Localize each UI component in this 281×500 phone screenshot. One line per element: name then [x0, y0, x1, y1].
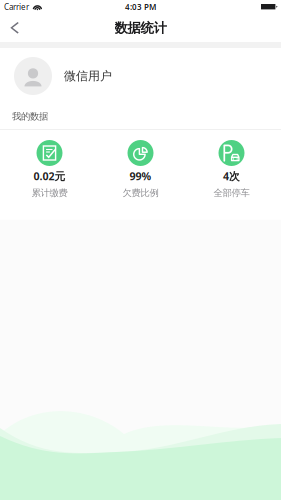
button[interactable]: 0.02元 [4, 140, 95, 199]
staticText: 累计缴费 [31, 187, 67, 199]
staticText: 微信用户 [64, 69, 112, 83]
staticText: 欠费比例 [122, 187, 158, 199]
staticText: 0.02元 [33, 169, 65, 183]
button[interactable]: 微信用户 [0, 48, 281, 104]
staticText: 全部停车 [213, 187, 249, 199]
staticText: Carrier [4, 2, 29, 12]
staticText: 4次 [223, 169, 240, 183]
button[interactable]: 4次 [186, 140, 277, 199]
staticText: 数据统计 [114, 20, 166, 36]
button[interactable]: 99% [95, 140, 186, 199]
button[interactable]: Back [0, 14, 31, 42]
staticText: 99% [129, 169, 151, 183]
staticText: 我的数据 [12, 111, 48, 122]
staticText: 4:03 PM [125, 2, 156, 12]
